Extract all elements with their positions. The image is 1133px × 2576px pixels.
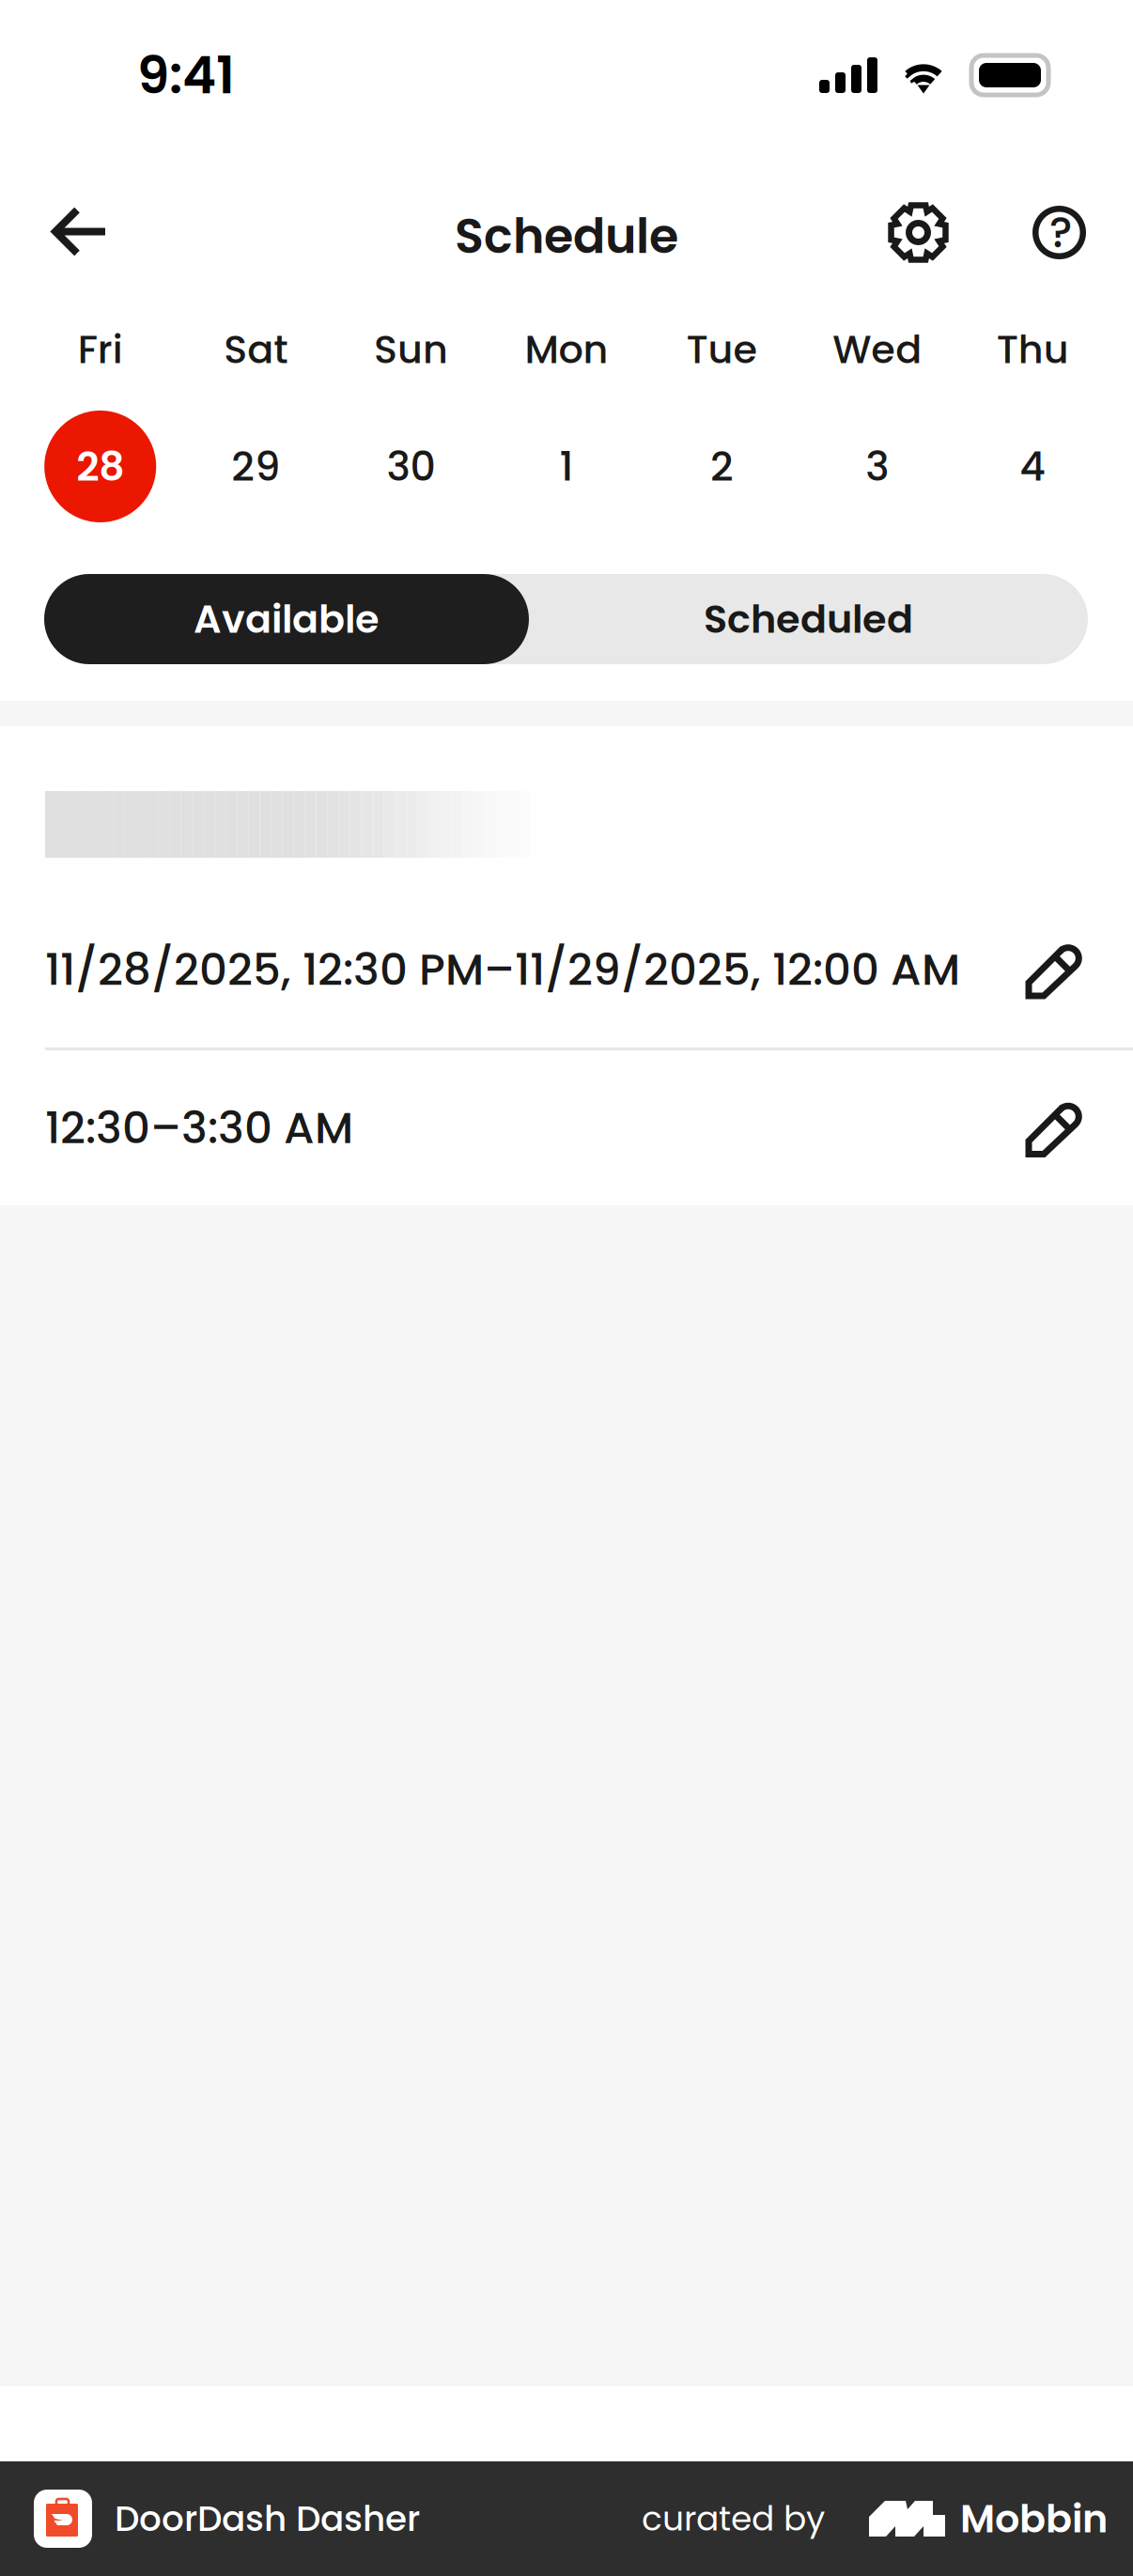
- button[interactable]: Wed: [800, 329, 955, 522]
- button[interactable]: Scheduled: [529, 574, 1088, 664]
- staticText: Wed: [833, 322, 922, 377]
- staticText: 12:30–3:30 AM: [45, 1097, 353, 1158]
- button[interactable]: Sun: [333, 329, 489, 522]
- button[interactable]: Help: [1032, 150, 1133, 315]
- staticText: 29: [231, 438, 280, 494]
- staticText: Sat: [224, 322, 288, 377]
- button[interactable]: Tue: [644, 329, 800, 522]
- staticText: 1: [559, 438, 574, 494]
- button[interactable]: Back: [0, 150, 128, 315]
- staticText: Schedule: [455, 203, 678, 270]
- staticText: 9:41: [137, 39, 235, 111]
- staticText: Tue: [686, 322, 758, 377]
- staticText: Thu: [997, 322, 1069, 377]
- button[interactable]: 11/28/2025, 12:30 PM–11/29/2025, 12:00 A…: [0, 892, 1133, 1047]
- staticText: Scheduled: [704, 592, 913, 646]
- button[interactable]: Thu: [955, 329, 1110, 522]
- staticText: Mobbin: [960, 2492, 1108, 2546]
- staticText: 3: [866, 438, 889, 494]
- staticText: DoorDash Dasher: [115, 2494, 420, 2543]
- staticText: ?: [1049, 203, 1072, 262]
- button[interactable]: Available: [44, 574, 529, 664]
- staticText: 4: [1020, 438, 1046, 494]
- staticText: Available: [194, 592, 380, 646]
- staticText: Mon: [525, 322, 608, 377]
- staticText: 11/28/2025, 12:30 PM–11/29/2025, 12:00 A…: [45, 939, 960, 1000]
- staticText: 2: [710, 438, 734, 494]
- staticText: Fri: [78, 322, 123, 377]
- staticText: 28: [76, 438, 124, 494]
- staticText: curated by: [642, 2495, 825, 2542]
- staticText: Sun: [374, 322, 448, 377]
- button[interactable]: Sat: [178, 329, 333, 522]
- button[interactable]: Mon: [489, 329, 644, 522]
- button[interactable]: Fri: [23, 329, 178, 522]
- button[interactable]: 12:30–3:30 AM: [0, 1050, 1133, 1205]
- button[interactable]: Settings: [887, 150, 950, 315]
- staticText: 30: [387, 438, 436, 494]
